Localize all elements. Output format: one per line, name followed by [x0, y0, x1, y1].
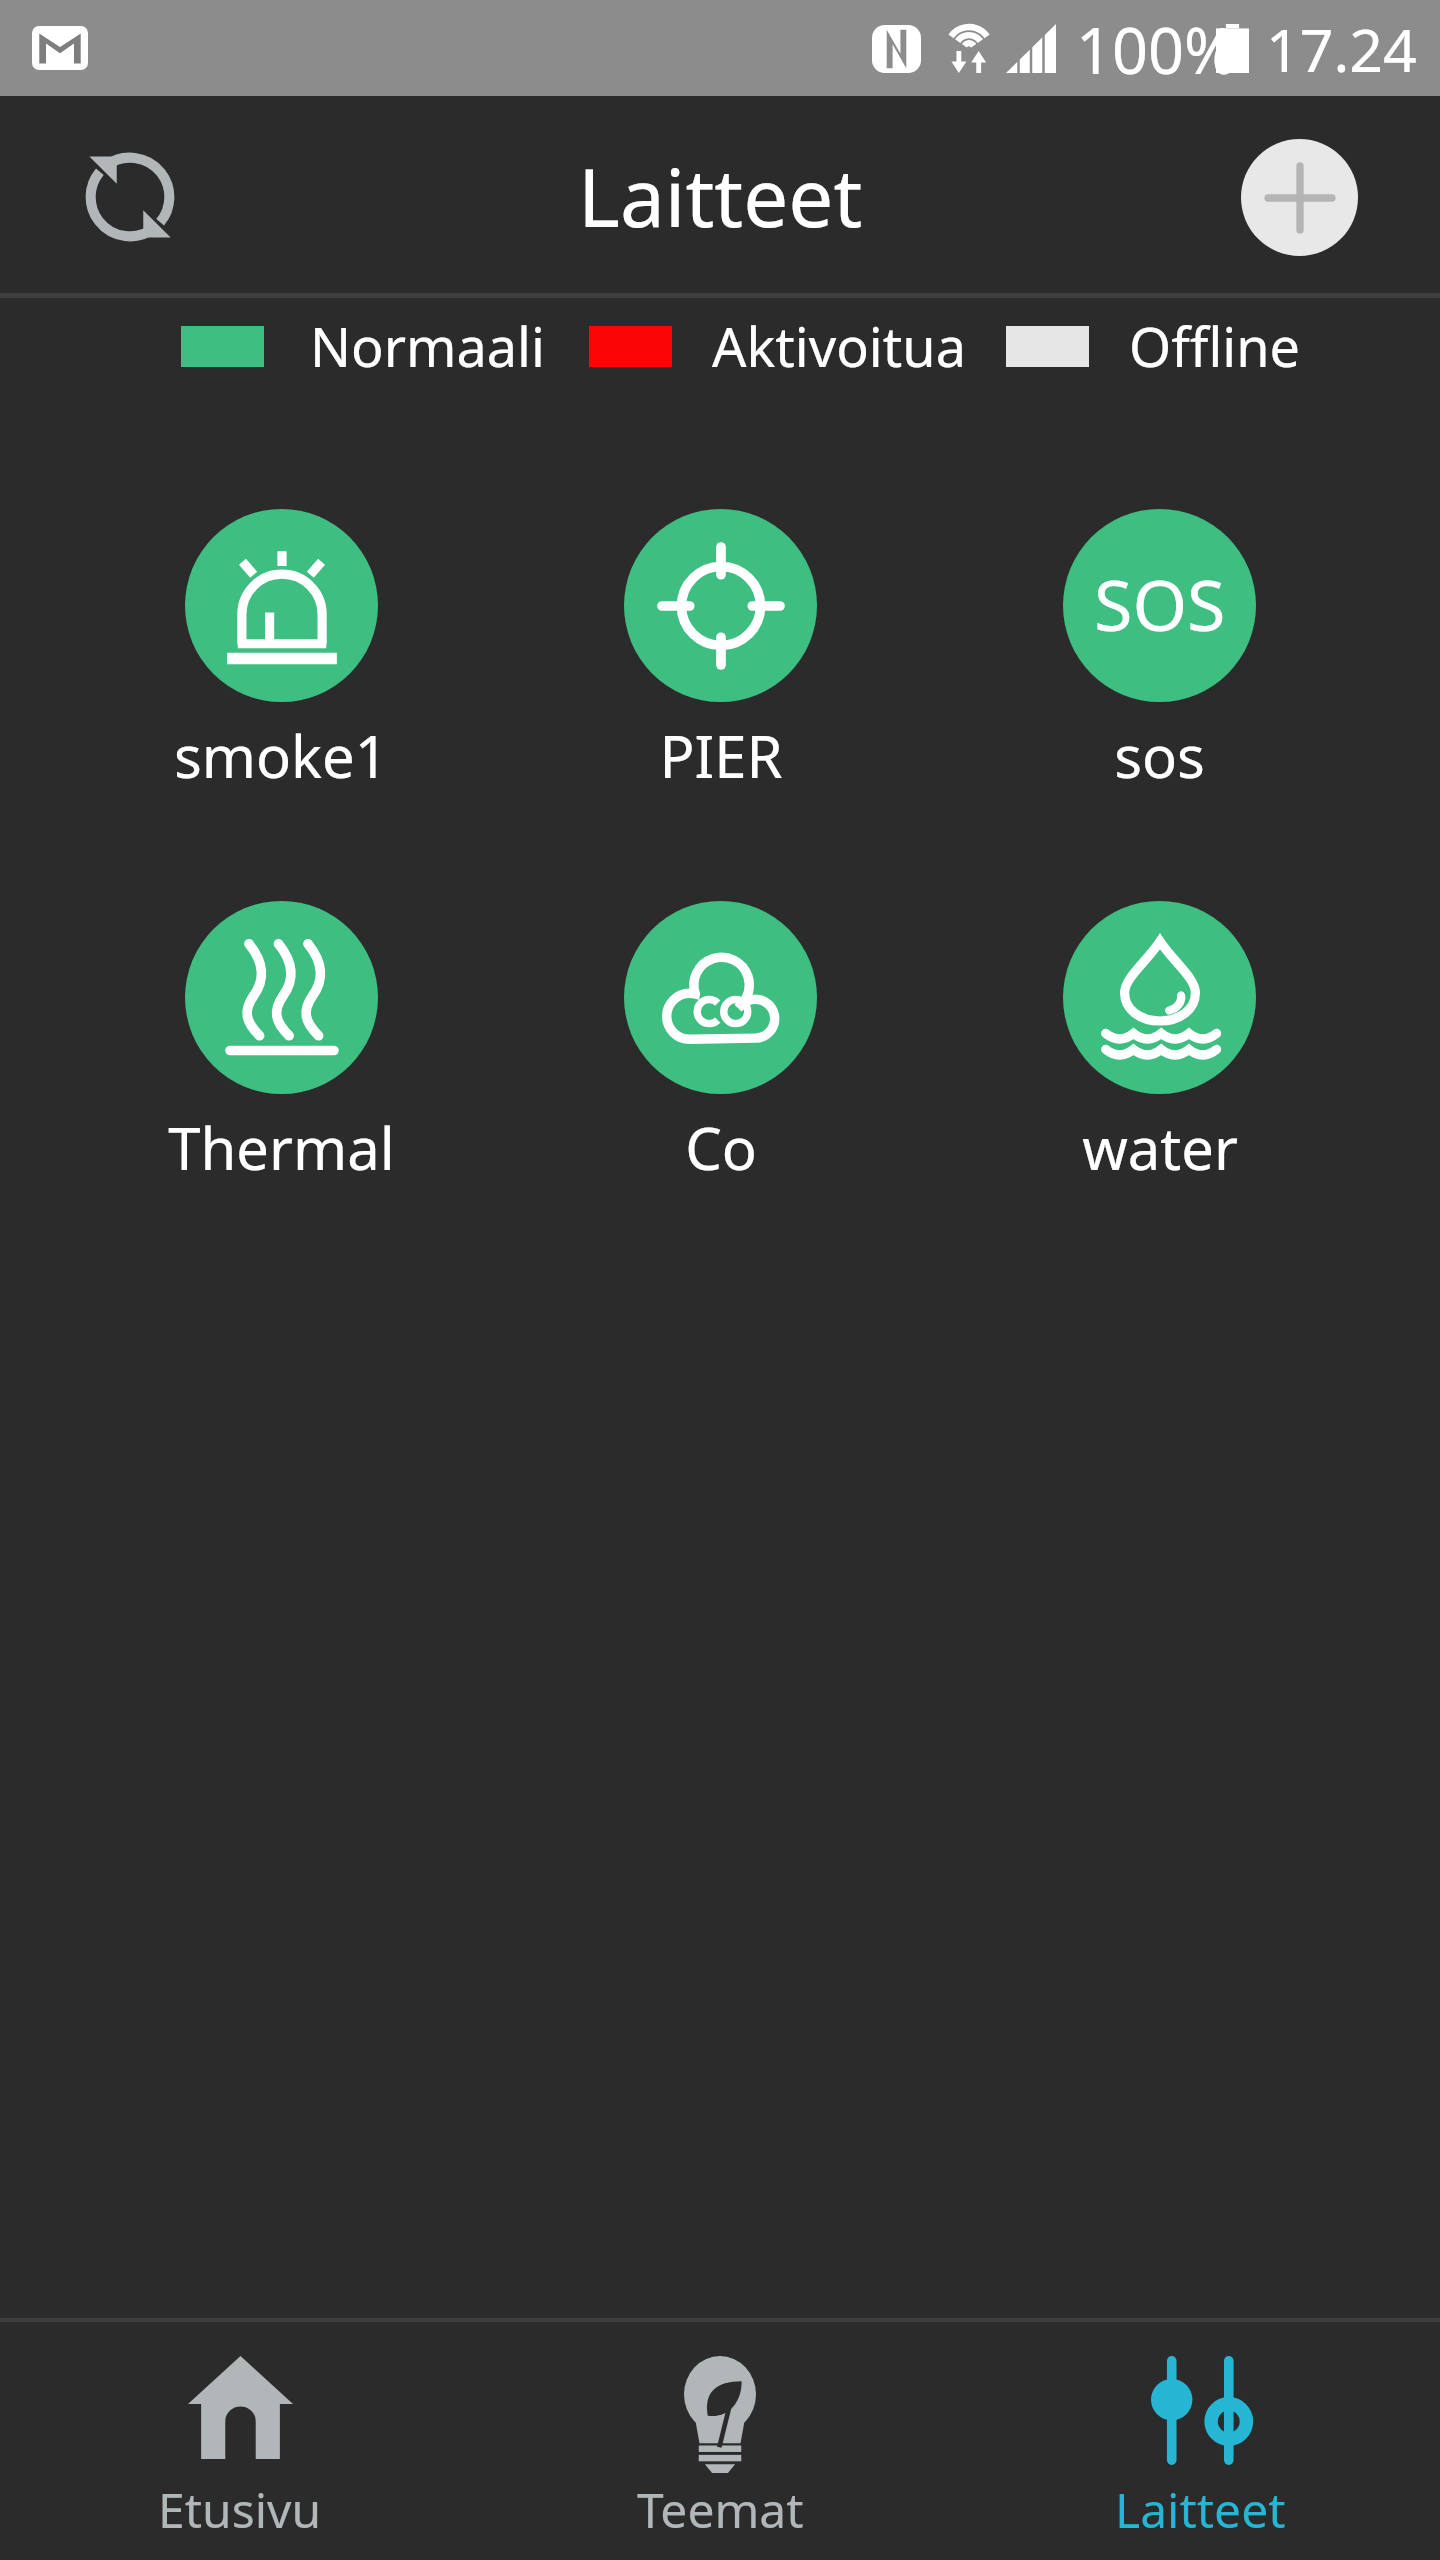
- button[interactable]: SOS: [940, 509, 1379, 795]
- staticText: Laitteet: [578, 141, 863, 250]
- staticText: Thermal: [168, 1108, 395, 1187]
- staticText: Offline: [1129, 309, 1301, 383]
- other: Home: [188, 2356, 293, 2459]
- button[interactable]: Themes: [480, 2322, 960, 2560]
- button[interactable]: smoke1: [61, 509, 501, 795]
- button[interactable]: Co: [501, 901, 940, 1187]
- button[interactable]: Devices: [960, 2322, 1440, 2560]
- staticText: 100%: [1076, 7, 1237, 93]
- other: Themes: [684, 2356, 756, 2473]
- button[interactable]: Thermal: [61, 901, 501, 1187]
- button[interactable]: water: [940, 901, 1379, 1187]
- staticText: Etusivu: [158, 2477, 322, 2542]
- button[interactable]: Home: [0, 2322, 480, 2560]
- staticText: Teemat: [637, 2477, 804, 2542]
- other: Devices: [1150, 2356, 1251, 2465]
- staticText: 17.24: [1266, 9, 1417, 89]
- staticText: smoke1: [174, 716, 388, 795]
- button[interactable]: Add device: [1241, 139, 1358, 256]
- button[interactable]: Refresh: [66, 133, 194, 261]
- staticText: SOS: [1094, 556, 1226, 651]
- staticText: sos: [1114, 716, 1205, 795]
- staticText: water: [1082, 1108, 1238, 1187]
- staticText: Normaali: [310, 309, 545, 383]
- staticText: Co: [685, 1108, 757, 1187]
- button[interactable]: PIER: [501, 509, 940, 795]
- staticText: PIER: [659, 716, 783, 795]
- staticText: Aktivoitua: [712, 309, 966, 383]
- staticText: Laitteet: [1115, 2477, 1286, 2542]
